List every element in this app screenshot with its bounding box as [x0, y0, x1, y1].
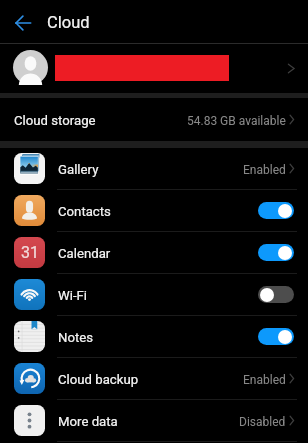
- button[interactable]: Cloud storage: [0, 98, 308, 141]
- button[interactable]: Contacts: [0, 190, 308, 231]
- staticText: Cloud backup: [58, 372, 139, 387]
- staticText: Cloud storage: [14, 113, 96, 128]
- button[interactable]: On: [258, 328, 294, 345]
- staticText: Notes: [58, 330, 94, 345]
- button[interactable]: On: [258, 244, 294, 261]
- button[interactable]: 31: [0, 232, 308, 273]
- button[interactable]: Off: [258, 286, 294, 303]
- button[interactable]: On: [258, 202, 294, 219]
- staticText: Enabled: [243, 373, 286, 387]
- staticText: Calendar: [58, 246, 111, 261]
- button[interactable]: Wi-Fi: [0, 274, 308, 315]
- staticText: Gallery: [58, 162, 99, 177]
- button[interactable]: Cloud backup: [0, 358, 308, 399]
- staticText: Disabled: [239, 415, 286, 429]
- button[interactable]: Back: [7, 7, 39, 39]
- button[interactable]: Gallery: [0, 148, 308, 189]
- button[interactable]: Notes: [0, 316, 308, 357]
- staticText: Cloud: [47, 13, 90, 32]
- staticText: 31: [21, 243, 39, 262]
- button[interactable]: [0, 44, 308, 93]
- staticText: Contacts: [58, 204, 111, 219]
- staticText: Wi-Fi: [58, 288, 88, 303]
- staticText: Enabled: [243, 163, 286, 177]
- staticText: More data: [58, 414, 118, 429]
- button[interactable]: More data: [0, 400, 308, 441]
- staticText: 54.83 GB available: [187, 114, 286, 128]
